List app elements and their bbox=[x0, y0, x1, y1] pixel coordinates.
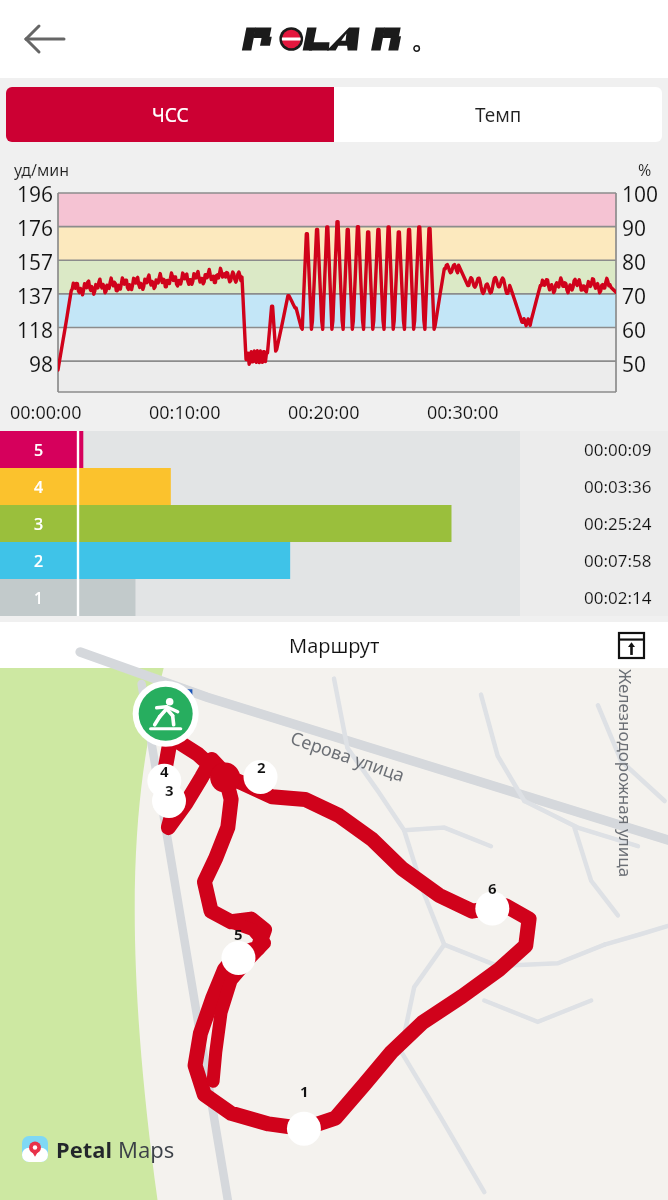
staticText: 1 bbox=[300, 1081, 309, 1099]
button[interactable]: ЧСС bbox=[6, 87, 334, 142]
button[interactable]: 4 bbox=[0, 468, 668, 505]
staticText: 4 bbox=[34, 476, 44, 498]
staticText: 00:25:24 bbox=[584, 512, 652, 535]
staticText: 2 bbox=[257, 757, 266, 775]
staticText: 60 bbox=[622, 316, 647, 345]
staticText: ЧСС bbox=[152, 102, 189, 128]
staticText: 00:30:00 bbox=[427, 400, 499, 425]
button[interactable]: Back bbox=[20, 14, 70, 64]
staticText: 00:10:00 bbox=[149, 400, 221, 425]
staticText: Серова улица bbox=[287, 725, 408, 788]
staticText: 70 bbox=[622, 282, 647, 311]
staticText: 5 bbox=[34, 439, 44, 461]
staticText: Маршрут bbox=[289, 632, 380, 659]
button[interactable]: 1 bbox=[0, 579, 668, 616]
staticText: 00:00:00 bbox=[10, 400, 82, 425]
staticText: 2 bbox=[34, 550, 44, 572]
staticText: 4 bbox=[160, 761, 169, 779]
button[interactable]: Route map bbox=[0, 668, 668, 1200]
staticText: 100 bbox=[622, 180, 659, 209]
staticText: 90 bbox=[622, 214, 647, 243]
button[interactable]: 2 bbox=[0, 542, 668, 579]
button[interactable]: Expand map bbox=[614, 628, 648, 662]
staticText: Железнодорожная улица bbox=[614, 669, 637, 878]
staticText: Темп bbox=[475, 102, 522, 128]
staticText: 5 bbox=[234, 924, 243, 942]
staticText: 3 bbox=[165, 780, 174, 798]
staticText: 98 bbox=[29, 350, 54, 379]
staticText: 50 bbox=[622, 350, 647, 379]
button[interactable]: 5 bbox=[0, 431, 668, 468]
staticText: 1 bbox=[34, 587, 44, 609]
staticText: 196 bbox=[17, 180, 54, 209]
staticText: 00:00:09 bbox=[584, 438, 652, 461]
staticText: 00:03:36 bbox=[584, 475, 652, 498]
button[interactable]: Темп bbox=[334, 87, 662, 142]
staticText: 00:07:58 bbox=[584, 549, 652, 572]
staticText: 137 bbox=[17, 282, 54, 311]
staticText: 157 bbox=[17, 248, 54, 277]
button[interactable]: 3 bbox=[0, 505, 668, 542]
staticText: 3 bbox=[34, 513, 44, 535]
staticText: Maps bbox=[118, 1134, 175, 1164]
staticText: 176 bbox=[17, 214, 54, 243]
staticText: 80 bbox=[622, 248, 647, 277]
staticText: уд/мин bbox=[14, 159, 70, 181]
staticText: 118 bbox=[17, 316, 54, 345]
staticText: 00:02:14 bbox=[584, 586, 652, 609]
staticText: Petal bbox=[56, 1134, 113, 1164]
staticText: 00:20:00 bbox=[288, 400, 360, 425]
staticText: % bbox=[638, 159, 652, 181]
staticText: 6 bbox=[488, 878, 497, 896]
